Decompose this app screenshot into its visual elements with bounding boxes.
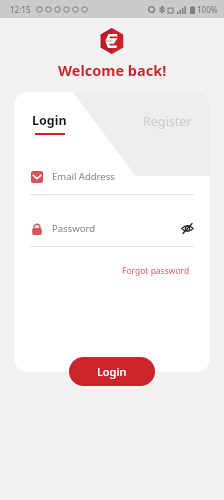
staticText: Welcome back! [58, 60, 167, 80]
button[interactable]: Email [30, 165, 194, 195]
other: Show password [181, 222, 194, 235]
staticText: Login [97, 364, 127, 379]
staticText: Password [52, 222, 95, 235]
button[interactable]: Forgot password [118, 261, 194, 281]
button[interactable]: Password [30, 217, 194, 247]
other: Email [31, 171, 43, 183]
staticText: Register [143, 113, 192, 130]
staticText: Forgot password [122, 265, 190, 277]
staticText: 12:15 [10, 4, 31, 15]
staticText: Login [32, 112, 67, 129]
button[interactable]: Register [141, 112, 194, 131]
button[interactable]: Login [30, 112, 69, 135]
staticText: Email Address [52, 170, 115, 183]
button[interactable]: Login [69, 357, 155, 386]
other: Password [31, 223, 43, 235]
staticText: 100% [197, 4, 218, 15]
